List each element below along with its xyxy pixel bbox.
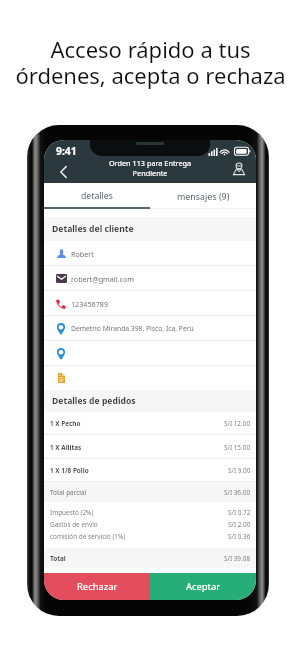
button[interactable]: Aceptar [150, 573, 256, 600]
staticText: S/I 12.00 [224, 419, 251, 428]
button[interactable]: Rechazar [44, 573, 150, 600]
staticText: S/I 0.72 [228, 508, 251, 517]
staticText: Rechazar [77, 580, 118, 593]
staticText: Impuesto (2%) [50, 508, 94, 517]
button[interactable] [44, 341, 256, 366]
button[interactable]: Back [52, 161, 74, 183]
staticText: Orden 113 para Entrega Pendiente [80, 158, 220, 178]
staticText: detalles [81, 190, 113, 202]
staticText: 1 X Allitas [50, 443, 82, 452]
staticText: 1 X Pecho [50, 419, 81, 428]
staticText: Gastos de envio [50, 520, 98, 529]
staticText: Detalles del cliente [52, 223, 134, 235]
button[interactable]: 1 X Allitas [44, 435, 256, 459]
button[interactable]: detalles [44, 183, 150, 209]
button[interactable]: Demetrio Miranda 398, Pisco, Ica, Perú [44, 316, 256, 341]
staticText: 123456789 [71, 299, 109, 309]
staticText: S/I 2.00 [228, 520, 251, 529]
staticText: comisión de servicio (1%) [50, 532, 126, 541]
staticText: S/I 39.08 [224, 554, 251, 563]
button[interactable]: Repartidor [230, 160, 248, 178]
staticText: 9:41 [56, 144, 77, 158]
staticText: mensajes (9) [177, 190, 230, 202]
staticText: S/I 0.36 [228, 532, 251, 541]
button[interactable]: 1 X 1/8 Pollo [44, 459, 256, 482]
staticText: Robert [71, 249, 94, 259]
staticText: robert@gmail.com [71, 274, 134, 284]
button[interactable]: 1 X Pecho [44, 412, 256, 435]
staticText: S/I 36.00 [224, 488, 251, 497]
button[interactable]: Robert [44, 241, 256, 266]
staticText: Total parcial [50, 488, 87, 497]
staticText: Acceso rápido a tus órdenes, acepta o re… [15, 34, 286, 91]
button[interactable] [44, 366, 256, 390]
staticText: Demetrio Miranda 398, Pisco, Ica, Perú [71, 324, 194, 333]
staticText: Aceptar [186, 580, 221, 593]
staticText: S/I 9.00 [228, 466, 251, 475]
staticText: S/I 15.00 [224, 443, 251, 452]
staticText: Detalles de pedidos [52, 395, 136, 407]
staticText: 1 X 1/8 Pollo [50, 466, 89, 475]
button[interactable]: mensajes (9) [150, 183, 256, 209]
staticText: Total [50, 554, 66, 563]
button[interactable]: 123456789 [44, 291, 256, 316]
button[interactable]: robert@gmail.com [44, 266, 256, 291]
